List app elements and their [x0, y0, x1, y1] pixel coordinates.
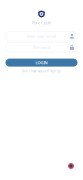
staticText: Pure Cycle — [32, 20, 51, 25]
staticText: Don't have account? Sign Up — [22, 69, 61, 73]
button[interactable]: Don't have account? Sign Up — [22, 69, 61, 73]
staticText: Enter your email — [27, 34, 56, 39]
staticText: LOGIN — [35, 60, 47, 65]
button[interactable]: Enter your email — [5, 32, 77, 41]
staticText: Password — [33, 45, 50, 50]
button[interactable]: LOGIN — [5, 59, 77, 67]
button[interactable]: Password — [5, 43, 77, 52]
button[interactable]: App badge — [68, 163, 83, 180]
